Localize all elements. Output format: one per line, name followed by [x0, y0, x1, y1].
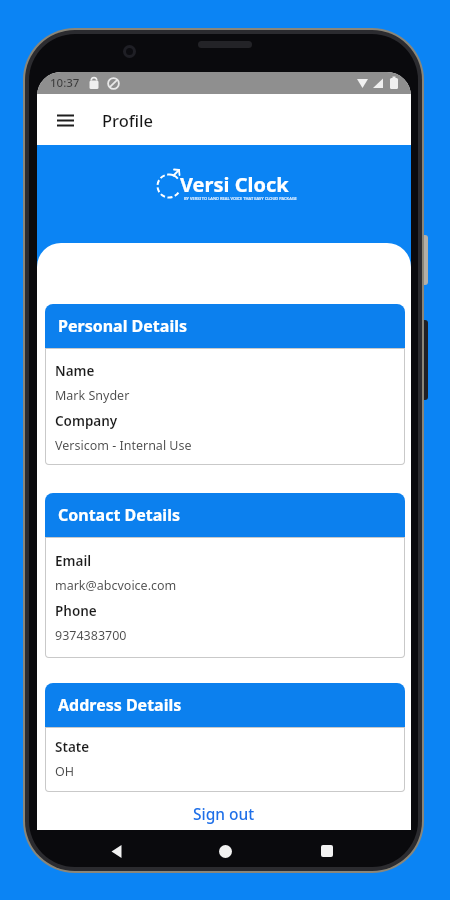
staticText: BY VERSI TO LAND REAL VOICE THAT EASY CL…	[184, 196, 297, 201]
button[interactable]	[213, 839, 237, 863]
staticText: OH	[55, 763, 75, 780]
staticText: Sign out	[193, 803, 255, 824]
button[interactable]	[48, 103, 82, 137]
staticText: Versi Clock	[180, 171, 289, 198]
button[interactable]	[104, 839, 128, 863]
staticText: Profile	[102, 109, 154, 131]
staticText: Name	[55, 362, 95, 380]
staticText: Phone	[55, 602, 97, 620]
staticText: mark@abcvoice.com	[55, 577, 177, 594]
staticText: Company	[55, 412, 118, 430]
staticText: Personal Details	[58, 315, 187, 337]
button[interactable]: Contact Details	[45, 493, 405, 537]
staticText: State	[55, 738, 90, 756]
button[interactable]: Personal Details	[45, 304, 405, 348]
staticText: Address Details	[58, 694, 182, 716]
button[interactable]: Sign out	[37, 796, 411, 830]
staticText: 9374383700	[55, 627, 127, 644]
staticText: Versicom - Internal Use	[55, 437, 192, 454]
staticText: Email	[55, 552, 92, 570]
button[interactable]	[315, 839, 339, 863]
staticText: Mark Snyder	[55, 387, 130, 404]
staticText: 10:37	[50, 75, 80, 91]
staticText: Contact Details	[58, 504, 180, 526]
button[interactable]: Address Details	[45, 683, 405, 727]
